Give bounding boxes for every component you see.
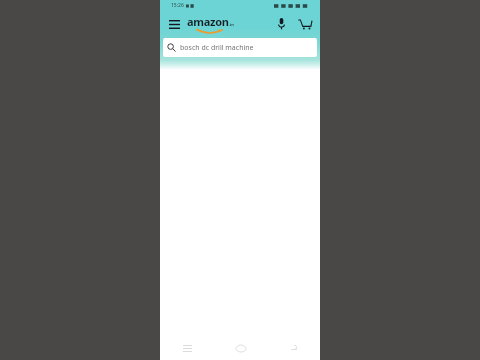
staticText: bosch dc drill machine: [180, 43, 254, 53]
button[interactable]: Shopping cart: [294, 13, 316, 35]
button[interactable]: Home: [214, 336, 267, 360]
staticText: 15:26: [171, 2, 184, 9]
button[interactable]: Open menu: [164, 14, 184, 34]
button[interactable]: Recent apps: [160, 336, 214, 360]
staticText: .in: [229, 22, 234, 27]
button[interactable]: Voice search: [271, 14, 291, 34]
button[interactable]: Amazon home: [187, 14, 234, 34]
staticText: amazon: [187, 14, 229, 29]
button[interactable]: bosch dc drill machine: [163, 38, 317, 57]
